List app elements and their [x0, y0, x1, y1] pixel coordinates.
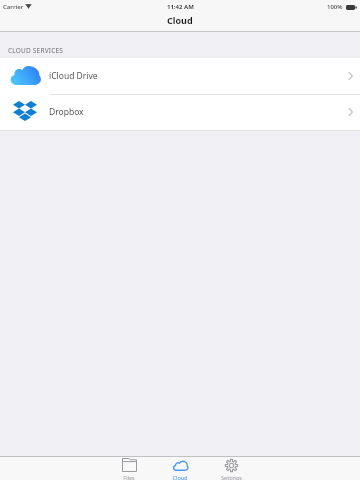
button[interactable]: iCloud Drive [0, 58, 360, 94]
staticText: 100% [327, 3, 343, 11]
staticText: Dropbox [49, 106, 84, 118]
button[interactable]: Cloud tab [160, 457, 200, 480]
staticText: 11:42 AM [167, 3, 194, 11]
button[interactable]: Settings tab [211, 457, 251, 480]
button[interactable]: Files tab [109, 457, 149, 480]
staticText: Cloud [167, 14, 193, 26]
staticText: Files [123, 474, 135, 480]
button[interactable]: Dropbox [0, 94, 360, 130]
staticText: iCloud Drive [49, 70, 98, 82]
staticText: Settings [221, 474, 242, 480]
staticText: Carrier [3, 3, 24, 11]
staticText: Cloud [172, 474, 188, 480]
staticText: CLOUD SERVICES [8, 46, 64, 55]
